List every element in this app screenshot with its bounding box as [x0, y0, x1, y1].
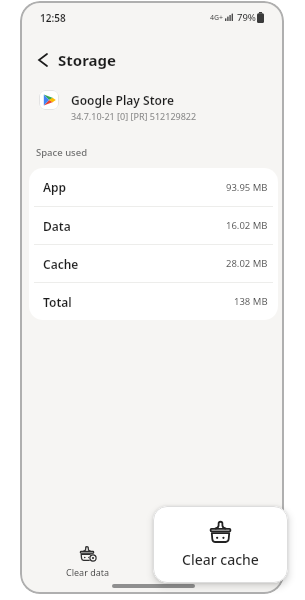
- staticText: 34.7.10-21 [0] [PR] 512129822: [71, 110, 197, 122]
- button[interactable]: Total: [29, 283, 278, 320]
- staticText: Clear data: [66, 566, 110, 578]
- staticText: Data: [43, 218, 71, 234]
- button[interactable]: Data: [29, 207, 278, 244]
- staticText: App: [43, 179, 67, 195]
- staticText: Cache: [43, 256, 79, 272]
- staticText: Clear cache: [182, 550, 259, 569]
- staticText: Total: [43, 294, 72, 310]
- button[interactable]: [28, 45, 58, 75]
- staticText: 28.02 MB: [226, 257, 268, 270]
- button[interactable]: Clear data: [58, 546, 118, 578]
- staticText: 16.02 MB: [226, 219, 268, 232]
- staticText: Space used: [36, 146, 88, 159]
- staticText: 12:58: [40, 11, 66, 25]
- button[interactable]: Clear cache: [153, 506, 288, 583]
- staticText: Google Play Store: [71, 92, 174, 108]
- button[interactable]: App: [29, 168, 278, 206]
- staticText: Storage: [58, 50, 116, 70]
- staticText: 4G+: [210, 13, 224, 23]
- button[interactable]: Cache: [29, 245, 278, 282]
- staticText: 79%: [237, 11, 256, 24]
- staticText: 138 MB: [234, 295, 268, 308]
- staticText: 93.95 MB: [226, 181, 268, 194]
